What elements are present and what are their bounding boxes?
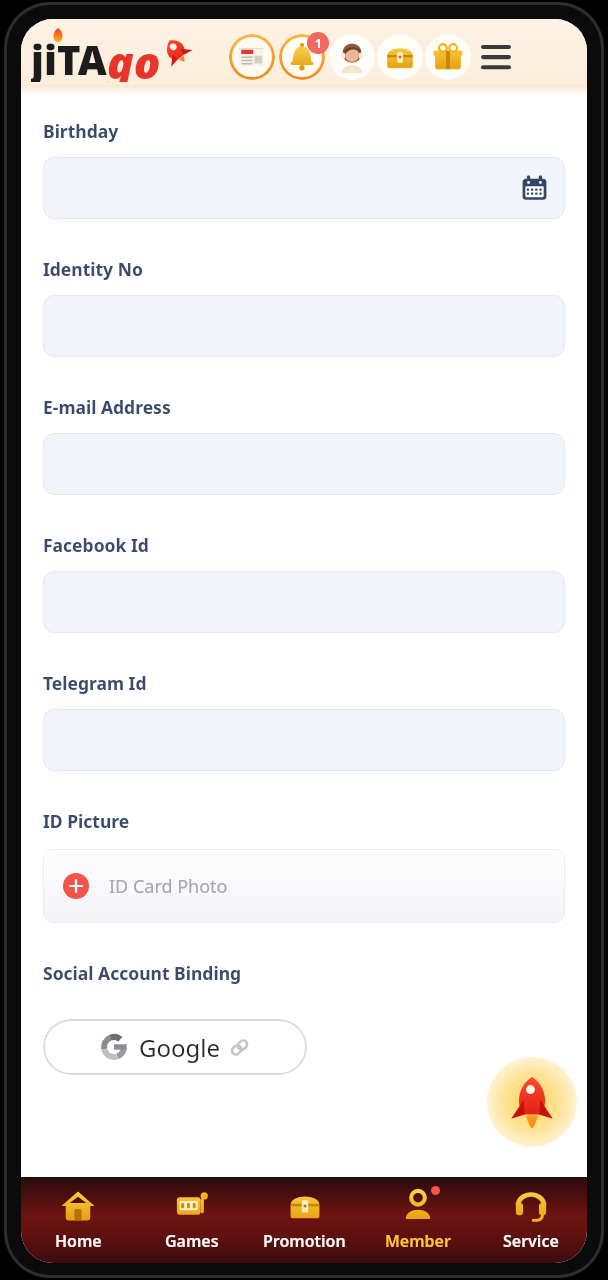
staticText: Facebook Id (43, 533, 149, 557)
button[interactable]: Home (21, 1177, 135, 1263)
staticText: 1 (315, 35, 322, 51)
staticText: jiTA (31, 32, 107, 82)
button[interactable]: ID Card Photo (43, 849, 565, 923)
button[interactable]: Notifications (279, 34, 325, 80)
button[interactable]: Pick date (43, 157, 565, 219)
button[interactable]: Treasure chest (377, 34, 423, 80)
button[interactable]: Menu (473, 34, 519, 80)
staticText: Google (139, 1031, 220, 1064)
staticText: Telegram Id (43, 671, 147, 695)
button[interactable]: Games (135, 1177, 248, 1263)
staticText: go (107, 32, 161, 82)
button[interactable]: Member (361, 1177, 474, 1263)
staticText: ID Card Photo (109, 874, 228, 899)
button[interactable]: Gifts (425, 34, 471, 80)
staticText: ID Picture (43, 809, 130, 833)
staticText: Social Account Binding (43, 961, 242, 985)
staticText: Member (385, 1230, 451, 1252)
button[interactable]: Scroll to top (487, 1057, 577, 1147)
button[interactable]: Google (43, 1019, 307, 1075)
staticText: Games (165, 1230, 219, 1252)
staticText: Promotion (263, 1230, 346, 1252)
button[interactable]: Promotion (248, 1177, 361, 1263)
staticText: E-mail Address (43, 395, 171, 419)
staticText: Home (55, 1230, 102, 1252)
button[interactable]: Pick date (519, 173, 549, 203)
button[interactable]: JitaGo home (31, 32, 227, 82)
button[interactable]: News (229, 34, 275, 80)
button[interactable]: Support agent (329, 34, 375, 80)
staticText: Service (503, 1230, 559, 1252)
button[interactable]: Service (474, 1177, 587, 1263)
staticText: Identity No (43, 257, 143, 281)
staticText: Birthday (43, 119, 119, 143)
